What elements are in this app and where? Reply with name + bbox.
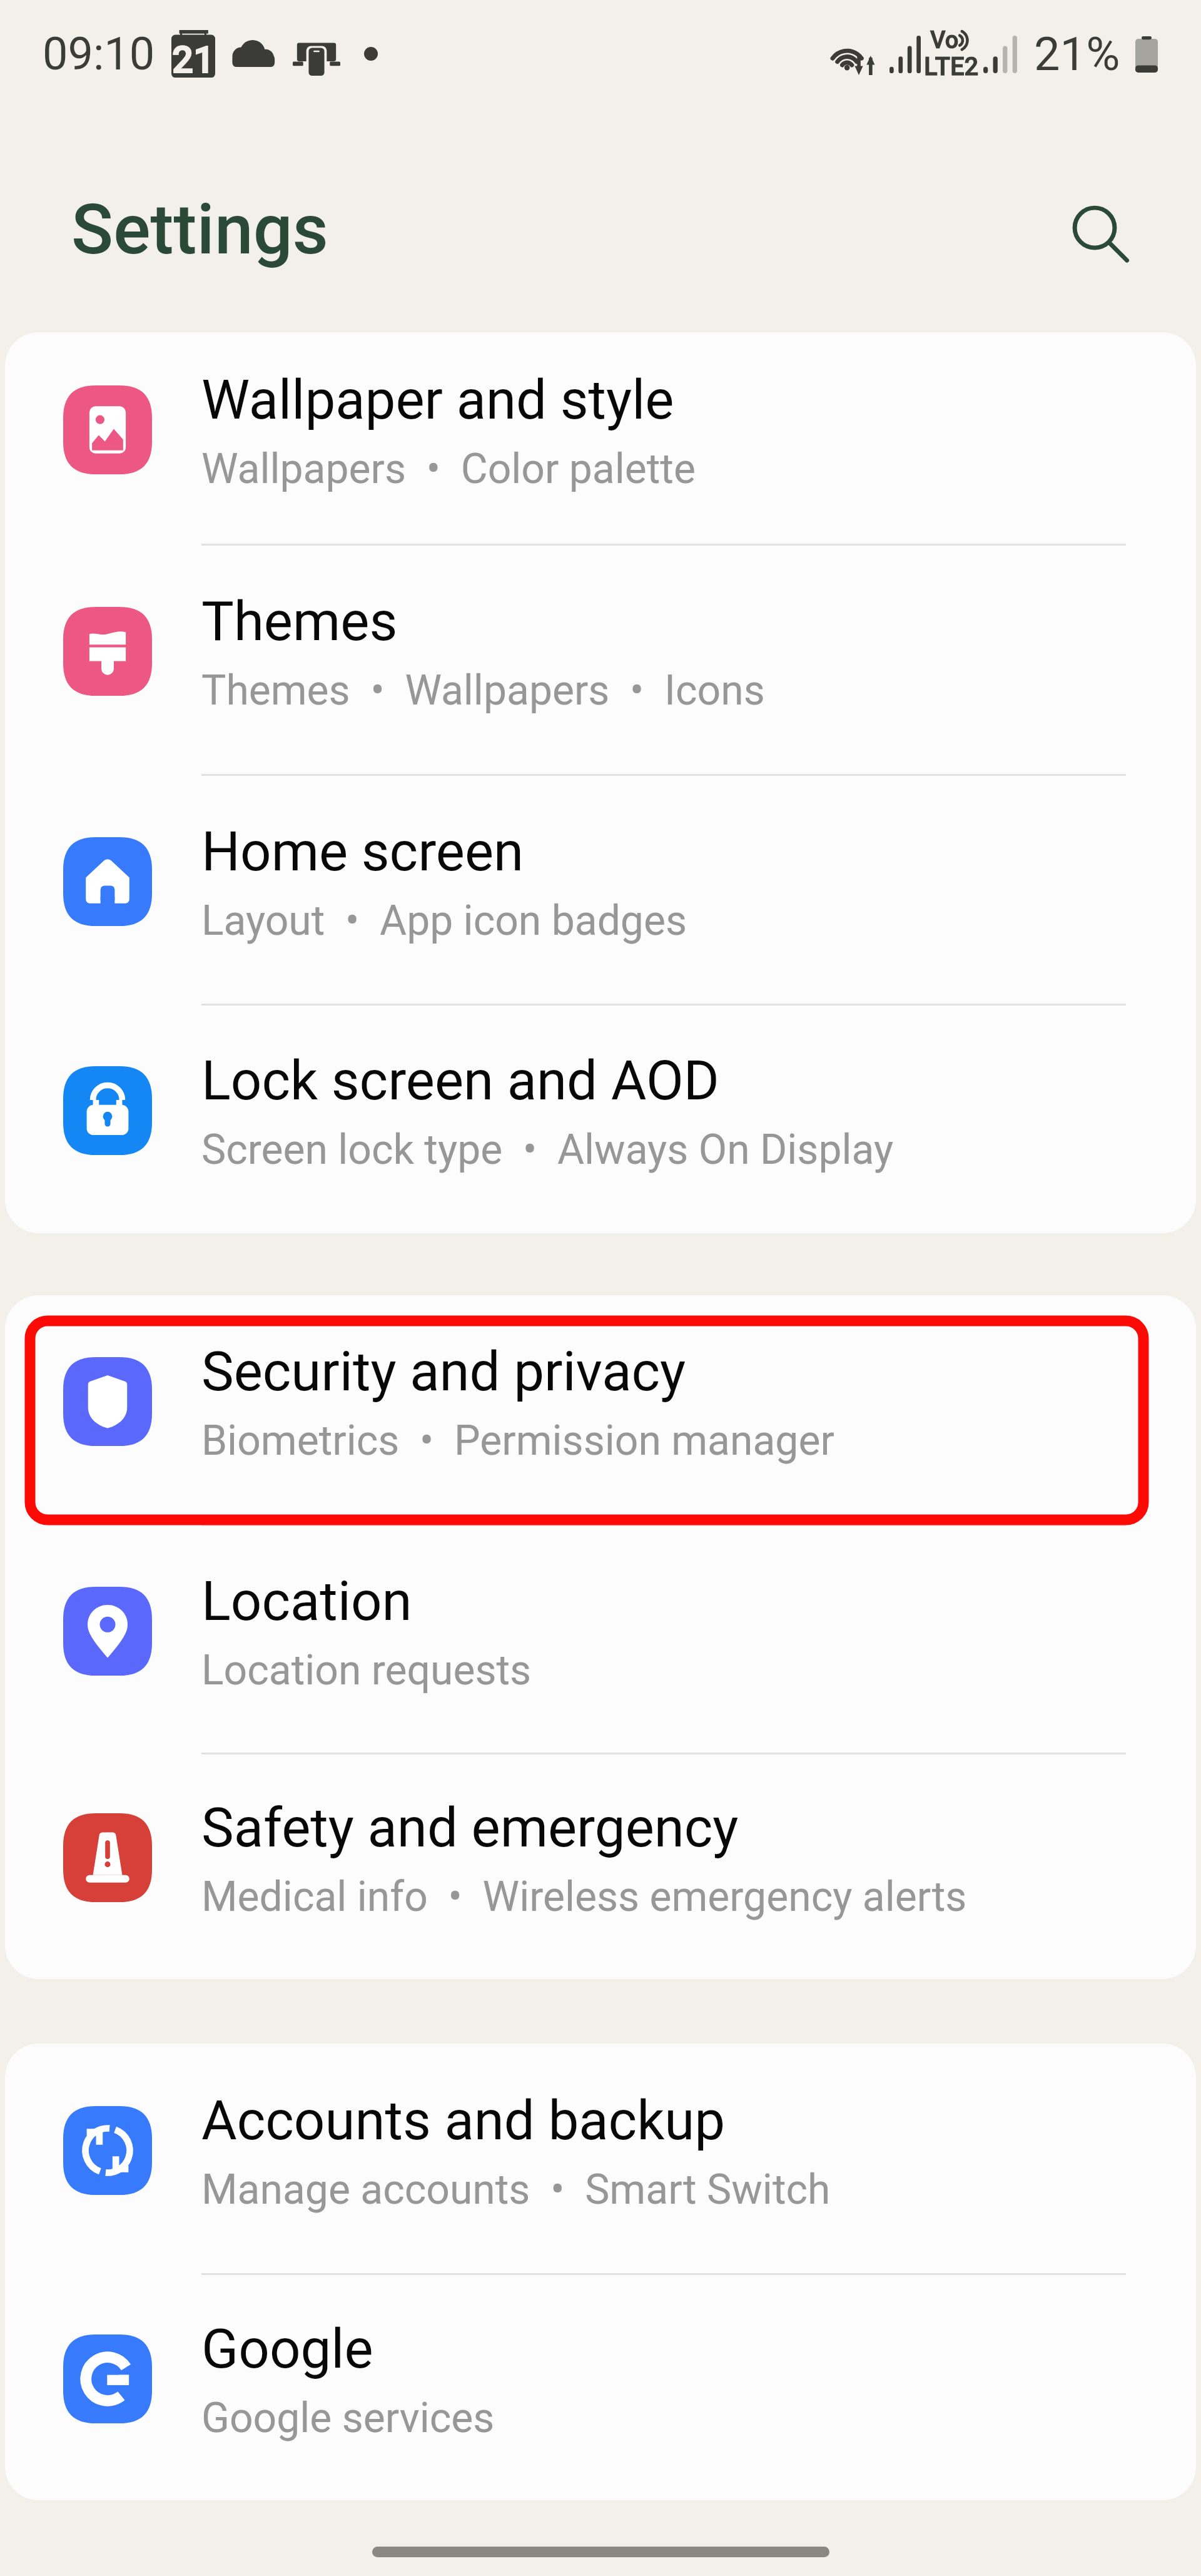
- staticText: Manage accounts • Smart Switch: [201, 2166, 831, 2214]
- button[interactable]: Search: [1065, 198, 1135, 268]
- staticText: Biometrics • Permission manager: [201, 1417, 834, 1465]
- button[interactable]: Security and privacy: [5, 1295, 1196, 1525]
- staticText: Lock screen and AOD: [201, 1049, 719, 1112]
- staticText: Wallpapers • Color palette: [201, 445, 696, 493]
- staticText: Vo: [930, 26, 959, 54]
- staticText: Location requests: [201, 1646, 532, 1694]
- staticText: Google services: [201, 2394, 495, 2442]
- button[interactable]: Themes: [5, 545, 1196, 775]
- staticText: Medical info • Wireless emergency alerts: [201, 1873, 967, 1921]
- button[interactable]: Lock screen and AOD: [5, 1005, 1196, 1233]
- staticText: Settings: [71, 189, 328, 270]
- staticText: Home screen: [201, 820, 524, 883]
- staticText: Wallpaper and style: [201, 368, 674, 432]
- staticText: 21: [172, 38, 215, 81]
- staticText: Security and privacy: [201, 1340, 686, 1403]
- staticText: 09:10: [43, 28, 155, 80]
- staticText: Layout • App icon badges: [201, 897, 687, 945]
- button[interactable]: Accounts and backup: [5, 2044, 1196, 2274]
- staticText: Location: [201, 1569, 412, 1633]
- staticText: Safety and emergency: [201, 1796, 739, 1860]
- button[interactable]: Google: [5, 2274, 1196, 2500]
- staticText: LTE2: [924, 52, 979, 81]
- staticText: Screen lock type • Always On Display: [201, 1126, 894, 1174]
- staticText: 21%: [1034, 27, 1120, 81]
- button[interactable]: Home screen: [5, 775, 1196, 1005]
- button[interactable]: Location: [5, 1525, 1196, 1754]
- button[interactable]: Safety and emergency: [5, 1754, 1196, 1979]
- staticText: Accounts and backup: [201, 2089, 726, 2152]
- button[interactable]: Wallpaper and style: [5, 332, 1196, 545]
- staticText: Themes • Wallpapers • Icons: [201, 666, 765, 715]
- staticText: Themes: [201, 589, 398, 653]
- staticText: Google: [201, 2317, 373, 2381]
